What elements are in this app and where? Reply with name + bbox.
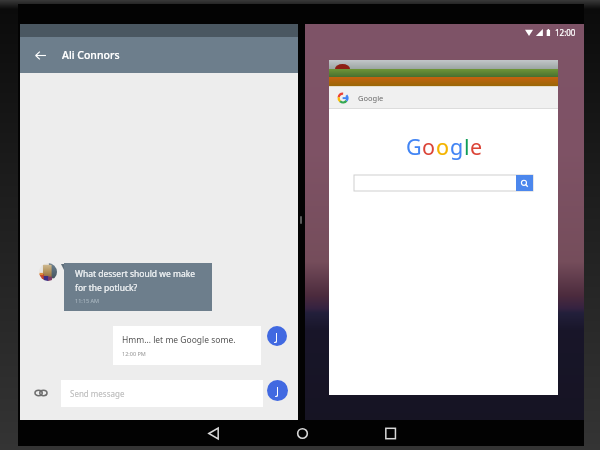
staticText: Send message (70, 388, 125, 399)
button[interactable]: J (267, 326, 287, 346)
staticText: J (275, 329, 279, 344)
button[interactable]: Home (289, 420, 315, 446)
staticText: Hmm… let me Google some. (122, 334, 236, 346)
button[interactable]: J (267, 380, 288, 401)
button[interactable]: Recent apps (377, 420, 403, 446)
staticText: 12:00 PM (122, 350, 146, 357)
button[interactable]: Back (22, 37, 58, 73)
staticText: o (436, 132, 450, 161)
staticText: 12:00 (555, 27, 576, 38)
staticText: G (406, 132, 422, 161)
staticText: J (276, 383, 280, 398)
button[interactable]: Attach file (30, 382, 52, 404)
button[interactable]: Google (329, 87, 558, 108)
button[interactable]: Hmm… let me Google some. (113, 326, 261, 365)
button[interactable]: What dessert should we make for the potl… (64, 263, 212, 311)
staticText: o (422, 132, 436, 161)
staticText: Ali Connors (62, 48, 120, 62)
staticText: 11:15 AM (75, 297, 99, 304)
button[interactable]: Send message (61, 380, 263, 407)
button[interactable] (354, 175, 533, 191)
staticText: l (464, 132, 470, 161)
staticText: g (450, 132, 464, 161)
staticText: Google (358, 93, 384, 103)
button[interactable]: Back (200, 420, 226, 446)
staticText: What dessert should we make for the potl… (75, 268, 196, 293)
staticText: e (470, 132, 483, 161)
